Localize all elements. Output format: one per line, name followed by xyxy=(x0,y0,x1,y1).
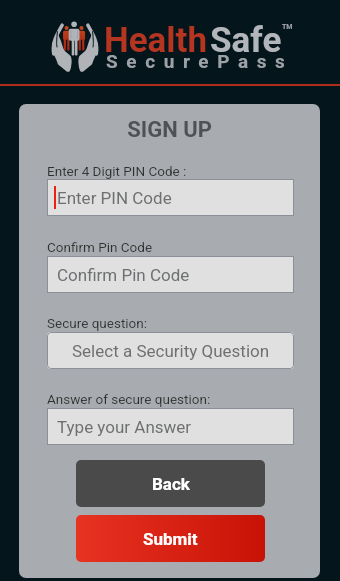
staticText: Enter 4 Digit PIN Code : xyxy=(47,163,187,179)
staticText: Confirm Pin Code xyxy=(57,265,190,285)
button[interactable]: Enter PIN Code xyxy=(47,179,294,216)
other: HealthSafe logo xyxy=(50,20,100,74)
staticText: TM xyxy=(282,23,293,31)
staticText: Answer of secure question: xyxy=(47,391,211,407)
staticText: Type your Answer xyxy=(57,417,192,437)
staticText: SIGN UP xyxy=(19,117,320,143)
button[interactable]: Submit xyxy=(76,515,265,562)
staticText: Secure question: xyxy=(47,315,148,331)
staticText: Select a Security Question xyxy=(72,341,270,361)
staticText: Safe xyxy=(210,20,282,61)
staticText: Confirm Pin Code xyxy=(47,239,153,255)
button[interactable]: Select a Security Question xyxy=(47,332,294,369)
staticText: SecurePass xyxy=(106,50,294,72)
button[interactable]: Confirm Pin Code xyxy=(47,256,294,293)
button[interactable]: Back xyxy=(76,460,265,507)
staticText: Health xyxy=(104,20,208,61)
staticText: Enter PIN Code xyxy=(57,188,172,208)
button[interactable]: Type your Answer xyxy=(47,408,294,445)
staticText: Back xyxy=(152,474,190,494)
staticText: Submit xyxy=(143,529,198,549)
